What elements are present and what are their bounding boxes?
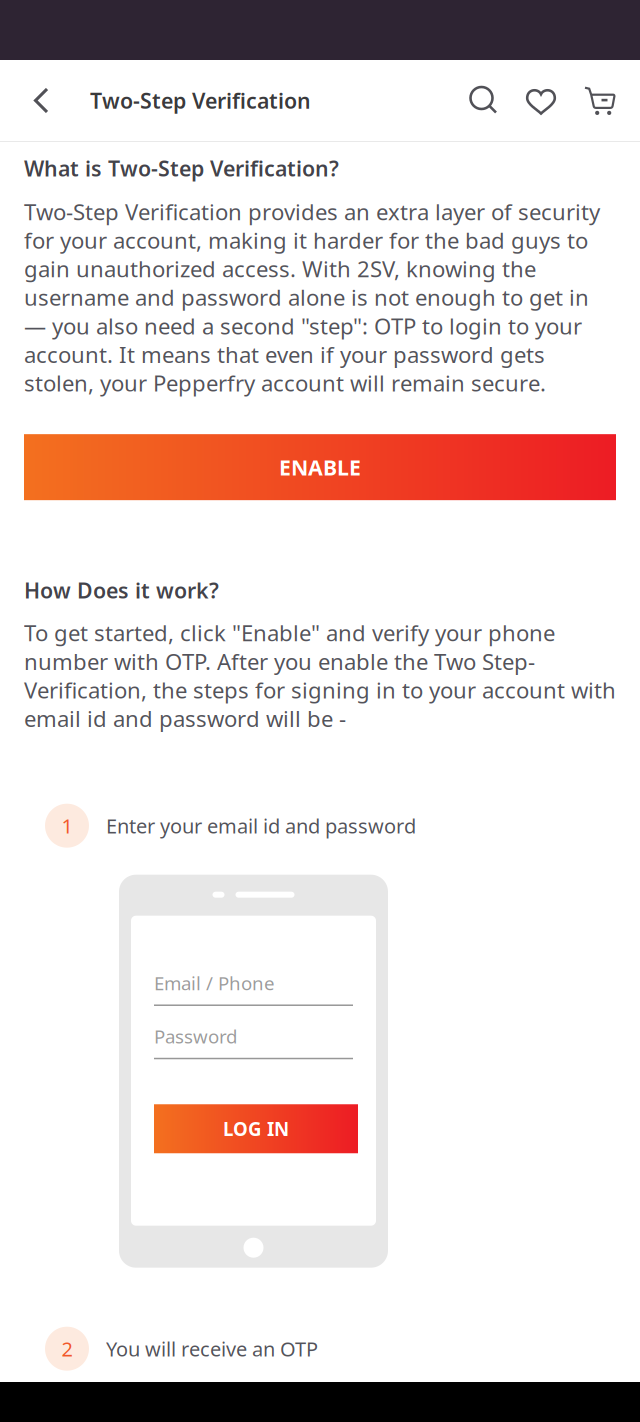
button[interactable]: Wishlist: [503, 84, 561, 116]
button[interactable]: ENABLE: [24, 434, 616, 500]
staticText: How Does it work?: [24, 576, 219, 604]
staticText: What is Two-Step Verification?: [24, 154, 339, 182]
staticText: ENABLE: [279, 453, 361, 481]
button[interactable]: Search: [464, 84, 503, 116]
button[interactable]: LOG IN: [154, 1104, 358, 1153]
staticText: Password: [154, 1024, 237, 1049]
staticText: To get started, click "Enable" and verif…: [24, 618, 616, 733]
staticText: 2: [61, 1335, 72, 1362]
button[interactable]: Back: [0, 84, 90, 116]
staticText: 1: [61, 812, 72, 839]
button[interactable]: Cart: [561, 84, 616, 116]
staticText: Two-Step Verification: [90, 86, 311, 115]
staticText: Email / Phone: [154, 971, 275, 995]
staticText: Two-Step Verification provides an extra …: [24, 197, 600, 397]
staticText: You will receive an OTP: [106, 1335, 318, 1362]
staticText: Enter your email id and password: [106, 812, 416, 839]
staticText: LOG IN: [223, 1116, 289, 1141]
